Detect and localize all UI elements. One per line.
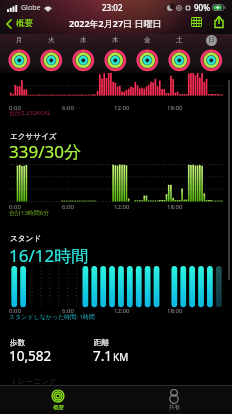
staticText: 合計2,232KCAL: [9, 109, 51, 117]
staticText: 火: [48, 36, 55, 44]
staticText: 7.1: [93, 347, 113, 365]
staticText: スタンドしなかった時間: 1時間: [9, 313, 95, 321]
staticText: 12:00: [114, 104, 130, 112]
staticText: 18:00: [167, 104, 183, 112]
staticText: トレーニング: [10, 377, 57, 387]
button[interactable]: Share: [212, 14, 226, 30]
staticText: 16/12時間: [9, 244, 89, 267]
staticText: 0:00: [9, 307, 21, 315]
staticText: 歩数: [10, 338, 26, 348]
staticText: 2022年2月27日 日曜日: [69, 17, 162, 29]
staticText: 共有: [169, 404, 180, 411]
staticText: 0:00: [9, 104, 21, 112]
staticText: 月: [16, 36, 23, 44]
staticText: 概要: [16, 18, 33, 29]
staticText: 6:00: [62, 203, 74, 211]
staticText: 合計13時間6分: [9, 209, 50, 217]
staticText: 23:02: [102, 2, 123, 13]
staticText: 水: [80, 36, 87, 44]
staticText: 18:00: [167, 203, 183, 211]
staticText: スタンド: [10, 234, 42, 244]
staticText: 6:00: [62, 104, 74, 112]
button[interactable]: Calendar: [189, 15, 204, 29]
staticText: 90%: [194, 2, 210, 13]
staticText: 6:00: [62, 307, 74, 315]
staticText: 概要: [53, 404, 64, 411]
staticText: 0:00: [9, 203, 21, 211]
staticText: 距離: [94, 338, 110, 348]
staticText: エクササイズ: [10, 132, 57, 142]
button[interactable]: 概要: [0, 386, 116, 414]
staticText: 金: [144, 36, 151, 44]
staticText: 12:00: [114, 203, 130, 211]
staticText: 日: [208, 36, 215, 44]
staticText: 339/30分: [9, 140, 81, 163]
staticText: KM: [113, 350, 129, 364]
button[interactable]: 共有: [116, 386, 232, 414]
staticText: 12:00: [114, 307, 130, 315]
staticText: 10,582: [9, 347, 52, 365]
button[interactable]: 概要: [3, 16, 36, 31]
staticText: 土: [176, 36, 183, 44]
staticText: 木: [112, 36, 119, 44]
staticText: 18:00: [167, 307, 183, 315]
staticText: Globe: [21, 3, 41, 13]
